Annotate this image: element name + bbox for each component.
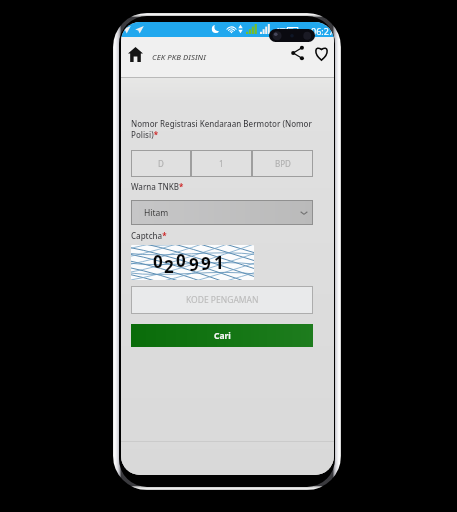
button[interactable]: Favorite (311, 42, 332, 63)
button[interactable]: 1 (191, 150, 252, 177)
button[interactable]: Hitam (131, 200, 313, 225)
staticText: 0 (176, 249, 186, 272)
staticText: Cari (214, 330, 231, 342)
staticText: 9 (189, 253, 199, 276)
staticText: 47% (276, 26, 288, 34)
button[interactable]: Home (124, 43, 147, 66)
staticText: Hitam (144, 207, 169, 219)
staticText: Nomor Registrasi Kendaraan Bermotor (Nom… (131, 118, 314, 141)
button[interactable]: Cari (131, 324, 313, 347)
staticText: Captcha* (131, 230, 167, 241)
button[interactable]: Share (287, 42, 308, 63)
staticText: CEK PKB DISINI (152, 52, 206, 63)
staticText: Warna TNKB* (131, 181, 184, 192)
button[interactable]: BPD (252, 150, 313, 177)
staticText: KODE PENGAMAN (186, 294, 259, 306)
staticText: 1 (219, 158, 224, 169)
button[interactable]: KODE PENGAMAN (131, 286, 313, 314)
staticText: D (158, 158, 164, 169)
staticText: 9 (201, 252, 211, 275)
staticText: 0 (153, 250, 163, 273)
button[interactable]: D (131, 150, 191, 177)
staticText: BPD (275, 158, 291, 169)
staticText: 2 (164, 255, 174, 278)
staticText: 1 (214, 251, 224, 274)
staticText: 06:27 (311, 25, 334, 37)
